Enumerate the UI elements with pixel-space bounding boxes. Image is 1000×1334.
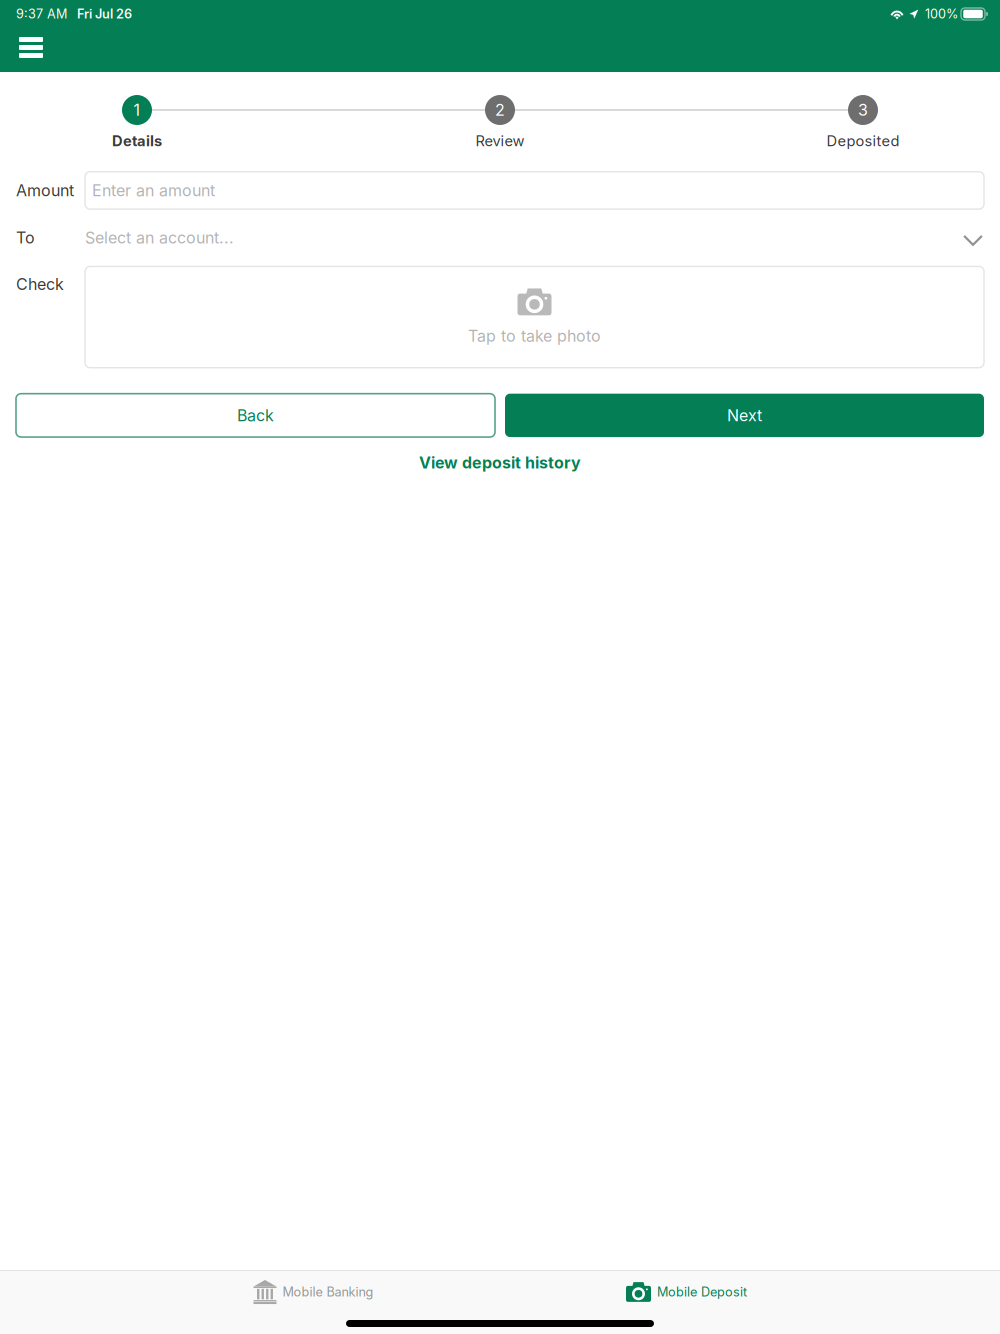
staticText: 100% — [925, 6, 958, 22]
staticText: 1 — [133, 100, 140, 120]
staticText: Enter an amount — [92, 181, 215, 200]
staticText: View deposit history — [419, 453, 581, 472]
staticText: To — [16, 228, 35, 247]
staticText: Amount — [16, 181, 74, 200]
staticText: Next — [727, 406, 762, 425]
button[interactable]: View deposit history — [407, 445, 593, 480]
staticText: Deposited — [826, 132, 899, 150]
staticText: 9:37 AM — [16, 6, 67, 22]
button[interactable]: Back — [16, 394, 495, 437]
button[interactable]: Tap to take photo — [85, 266, 984, 368]
staticText: Details — [112, 132, 162, 150]
staticText: Mobile Banking — [282, 1284, 373, 1300]
staticText: Back — [237, 406, 274, 425]
button[interactable]: Menu — [9, 37, 53, 77]
button[interactable]: To — [0, 210, 1000, 265]
staticText: Fri Jul 26 — [77, 6, 132, 22]
button[interactable]: Mobile Banking — [127, 1269, 500, 1315]
staticText: Tap to take photo — [468, 326, 601, 346]
staticText: Review — [475, 132, 524, 150]
button[interactable]: Next — [505, 394, 984, 437]
button[interactable]: Enter an amount — [85, 172, 984, 209]
button[interactable]: Mobile Deposit — [500, 1271, 873, 1313]
staticText: Mobile Deposit — [657, 1284, 747, 1300]
staticText: 3 — [858, 100, 868, 120]
staticText: 2 — [495, 100, 505, 120]
staticText: Check — [16, 274, 64, 294]
staticText: Select an account... — [85, 228, 234, 247]
